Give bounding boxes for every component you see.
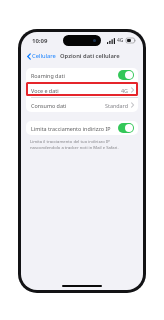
staticText: Opzioni dati cellulare: [60, 52, 120, 60]
button[interactable]: Cellulare: [25, 50, 58, 62]
button[interactable]: Limita tracciamento indirizzo IP: [26, 121, 138, 135]
staticText: 4G: [117, 37, 124, 44]
staticText: Limita il tracciamento del tuo indirizzo…: [30, 139, 135, 151]
staticText: Cellulare: [32, 52, 56, 60]
staticText: Limita tracciamento indirizzo IP: [31, 125, 118, 132]
staticText: 10:09: [32, 37, 48, 45]
button[interactable]: Roaming dati: [26, 68, 138, 82]
button[interactable]: Interruttore attivo: [118, 70, 134, 80]
staticText: 4G: [121, 87, 129, 94]
staticText: Voce e dati: [31, 87, 121, 94]
button[interactable]: Interruttore attivo: [118, 123, 134, 133]
button[interactable]: Voce e dati: [26, 83, 138, 97]
staticText: Roaming dati: [31, 72, 118, 79]
staticText: Standard: [105, 102, 129, 109]
staticText: Consumo dati: [31, 102, 105, 109]
button[interactable]: Consumo dati: [26, 98, 138, 112]
